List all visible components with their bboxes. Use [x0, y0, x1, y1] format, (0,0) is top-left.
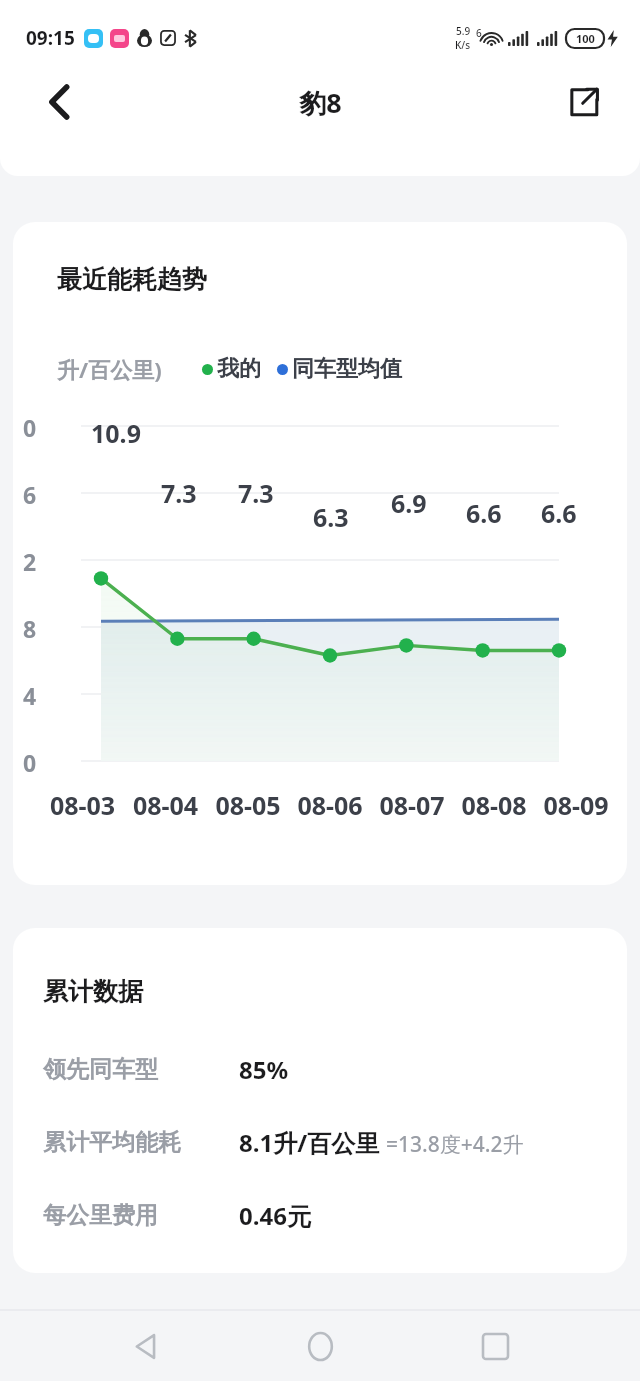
- staticText: 08-05: [207, 788, 289, 822]
- staticText: 08-08: [453, 788, 535, 822]
- button[interactable]: 累计数据: [13, 928, 627, 1273]
- button[interactable]: Back: [34, 76, 86, 128]
- staticText: 豹8: [299, 84, 342, 121]
- staticText: 08-06: [289, 788, 371, 822]
- staticText: 85%: [239, 1053, 289, 1086]
- staticText: 4: [23, 680, 37, 711]
- staticText: 累计数据: [43, 976, 143, 1007]
- button[interactable]: Home: [291, 1317, 349, 1375]
- staticText: 08-04: [124, 788, 207, 822]
- staticText: 0: [23, 747, 37, 778]
- staticText: 0: [23, 412, 37, 443]
- staticText: 6: [23, 479, 37, 510]
- button[interactable]: Share: [558, 76, 610, 128]
- staticText: 6.6: [466, 496, 502, 530]
- staticText: 领先同车型: [43, 1055, 158, 1084]
- staticText: 8: [23, 613, 37, 644]
- staticText: 100: [576, 31, 595, 46]
- button[interactable]: Back: [117, 1317, 175, 1375]
- staticText: 10.9: [91, 416, 141, 450]
- staticText: 6.3: [313, 500, 349, 534]
- staticText: 08-03: [41, 788, 124, 822]
- staticText: =13.8度+4.2升: [386, 1130, 524, 1159]
- staticText: 升/百公里): [57, 354, 162, 384]
- staticText: 累计平均能耗: [43, 1128, 181, 1157]
- staticText: 7.3: [161, 476, 197, 510]
- staticText: 6.6: [541, 496, 577, 530]
- staticText: 6: [476, 26, 482, 40]
- staticText: 每公里费用: [43, 1201, 158, 1230]
- button[interactable]: 最近能耗趋势: [13, 222, 627, 885]
- button[interactable]: Recent apps: [466, 1317, 524, 1375]
- staticText: 0.46元: [239, 1199, 311, 1232]
- staticText: 7.3: [238, 476, 274, 510]
- staticText: 同车型均值: [292, 355, 402, 383]
- staticText: 08-07: [371, 788, 453, 822]
- staticText: 8.1升/百公里: [239, 1126, 380, 1159]
- staticText: 08-09: [535, 788, 617, 822]
- staticText: 6.9: [391, 486, 427, 520]
- staticText: 2: [23, 546, 37, 577]
- staticText: 我的: [217, 355, 261, 383]
- staticText: K/s: [455, 38, 471, 52]
- staticText: 最近能耗趋势: [57, 264, 207, 295]
- staticText: 09:15: [26, 25, 75, 51]
- staticText: 5.9: [456, 24, 471, 38]
